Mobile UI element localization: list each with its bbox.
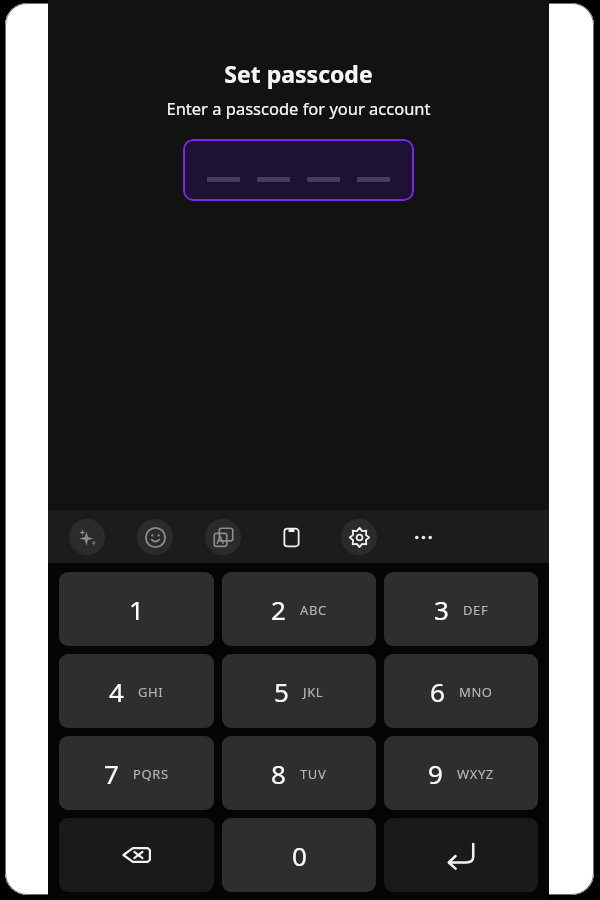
button[interactable]: 9 [384, 736, 538, 810]
button[interactable]: 0 [222, 818, 376, 892]
staticText: Enter a passcode for your account [166, 97, 431, 119]
staticText: MNO [459, 683, 493, 701]
staticText: 8 [271, 756, 286, 791]
button[interactable]: 7 [59, 736, 214, 810]
button[interactable]: 5 [222, 654, 376, 728]
staticText: ABC [300, 601, 327, 619]
button[interactable]: Settings [341, 519, 377, 555]
staticText: DEF [463, 601, 489, 619]
staticText: PQRS [133, 765, 169, 783]
button[interactable]: Enter [384, 818, 538, 892]
staticText: WXYZ [457, 765, 494, 783]
staticText: Set passcode [224, 58, 373, 89]
staticText: 0 [292, 838, 307, 873]
button[interactable]: Emoji [137, 519, 173, 555]
staticText: JKL [303, 683, 324, 701]
button[interactable] [183, 139, 414, 201]
staticText: GHI [138, 683, 164, 701]
staticText: 2 [271, 592, 286, 627]
button[interactable]: 2 [222, 572, 376, 646]
button[interactable]: 6 [384, 654, 538, 728]
staticText: TUV [300, 765, 327, 783]
staticText: 7 [104, 756, 119, 791]
button[interactable]: 4 [59, 654, 214, 728]
button[interactable]: Backspace [59, 818, 214, 892]
button[interactable]: Clipboard [273, 519, 309, 555]
button[interactable]: 8 [222, 736, 376, 810]
button[interactable]: Translate [205, 519, 241, 555]
staticText: 1 [129, 592, 144, 627]
staticText: 4 [109, 674, 124, 709]
staticText: 3 [434, 592, 449, 627]
button[interactable]: Magic compose [69, 519, 105, 555]
staticText: 6 [430, 674, 445, 709]
button[interactable]: More options [405, 519, 441, 555]
staticText: 9 [428, 756, 443, 791]
staticText: 5 [274, 674, 289, 709]
button[interactable]: 3 [384, 572, 538, 646]
button[interactable]: 1 [59, 572, 214, 646]
